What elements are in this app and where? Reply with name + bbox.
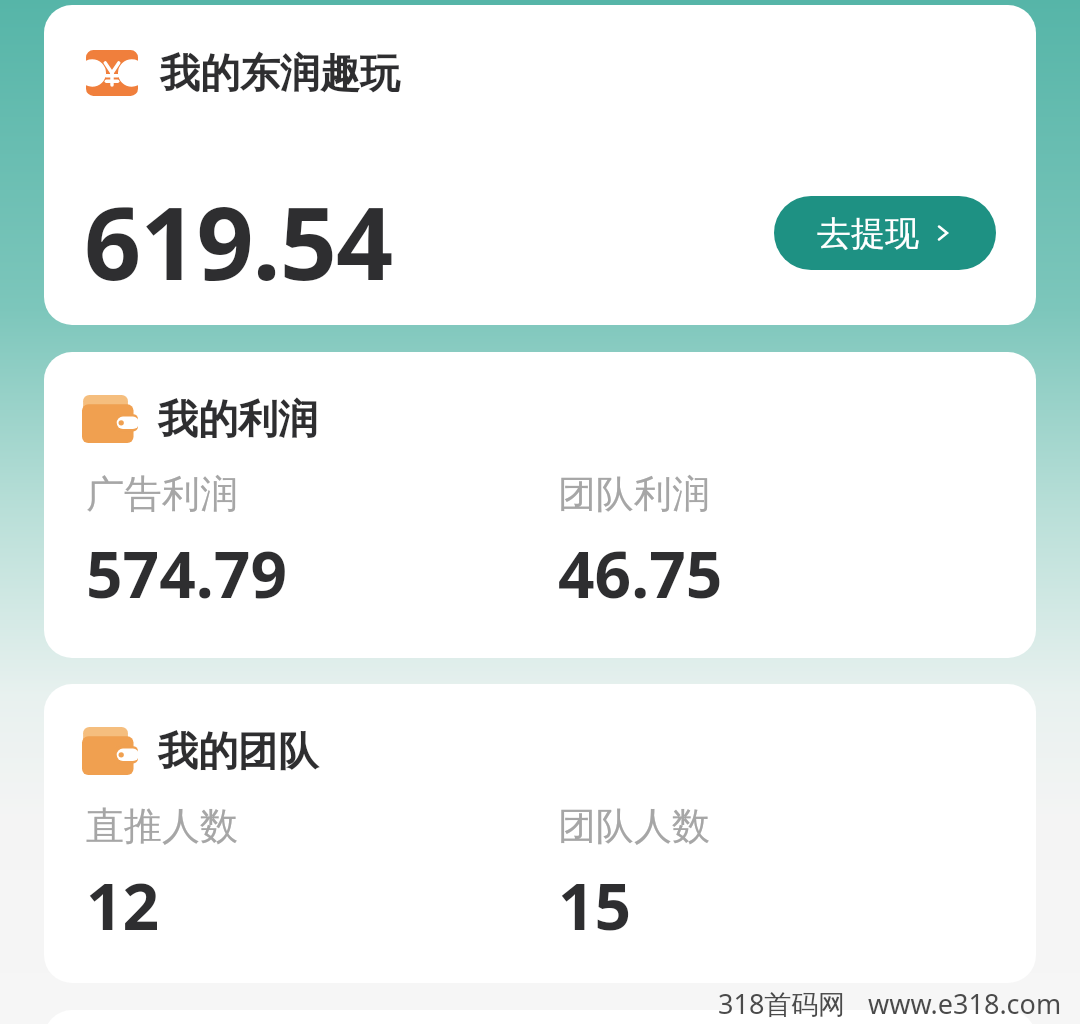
staticText: 574.79 xyxy=(86,530,288,617)
other: 优惠券 xyxy=(86,50,138,96)
staticText: 我的团队 xyxy=(158,726,318,776)
staticText: 我的东润趣玩 xyxy=(160,48,400,98)
staticText: www.e318.com xyxy=(868,985,1062,1022)
staticText: 去提现 xyxy=(817,212,919,255)
staticText: 15 xyxy=(558,862,632,949)
button[interactable]: 钱包 xyxy=(44,684,1036,983)
button[interactable]: 去提现 xyxy=(774,196,996,270)
staticText: 318首码网 xyxy=(718,985,846,1022)
other: 钱包 xyxy=(82,395,138,443)
staticText: 团队利润 xyxy=(558,470,710,518)
button[interactable]: 钱包 xyxy=(44,352,1036,658)
staticText: 619.54 xyxy=(84,173,393,309)
staticText: 12 xyxy=(86,862,160,949)
staticText: 广告利润 xyxy=(86,470,238,518)
staticText: 团队人数 xyxy=(558,802,710,850)
staticText: 46.75 xyxy=(558,530,723,617)
staticText: 直推人数 xyxy=(86,802,238,850)
other: 钱包 xyxy=(82,727,138,775)
staticText: 我的利润 xyxy=(158,394,318,444)
